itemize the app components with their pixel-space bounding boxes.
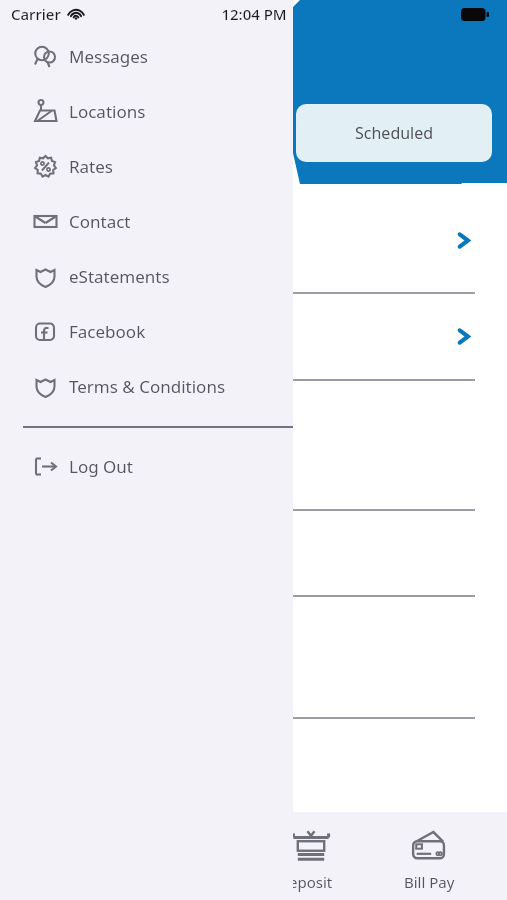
- button[interactable]: Terms & Conditions: [0, 359, 293, 414]
- button[interactable]: eStatements: [0, 249, 293, 304]
- button[interactable]: Facebook: [0, 304, 293, 359]
- button[interactable]: [16, 597, 492, 717]
- staticText: Messages: [69, 45, 149, 68]
- button[interactable]: eposit: [252, 812, 370, 900]
- staticText: eposit: [289, 872, 333, 892]
- other: Open details: [455, 232, 472, 249]
- other: Open details: [455, 328, 472, 345]
- staticText: Terms & Conditions: [69, 375, 226, 398]
- staticText: Contact: [69, 210, 131, 233]
- button[interactable]: Bill Pay: [370, 812, 488, 900]
- staticText: eStatements: [69, 265, 170, 288]
- staticText: Scheduled: [355, 122, 434, 144]
- button[interactable]: Messages: [0, 29, 293, 84]
- staticText: Facebook: [69, 320, 146, 343]
- staticText: Locations: [69, 100, 146, 123]
- button[interactable]: [16, 511, 492, 595]
- staticText: Carrier: [11, 4, 61, 24]
- staticText: Bill Pay: [404, 872, 455, 892]
- button[interactable]: [16, 381, 492, 509]
- button[interactable]: Log Out: [0, 439, 293, 494]
- button[interactable]: Open details: [16, 188, 492, 292]
- button[interactable]: Scheduled: [296, 104, 492, 162]
- staticText: 12:04 PM: [221, 4, 287, 24]
- button[interactable]: Contact: [0, 194, 293, 249]
- button[interactable]: Locations: [0, 84, 293, 139]
- staticText: Rates: [69, 155, 113, 178]
- button[interactable]: Rates: [0, 139, 293, 194]
- staticText: Log Out: [69, 455, 133, 478]
- button[interactable]: Open details: [16, 294, 492, 379]
